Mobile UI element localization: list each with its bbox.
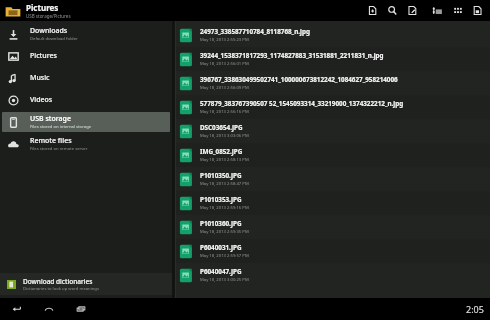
staticText: May 18, 2013 3:03:06 PM bbox=[200, 133, 249, 139]
button[interactable]: Remote files bbox=[2, 134, 170, 154]
staticText: Files stored on remote server bbox=[30, 146, 88, 152]
button[interactable]: 24973_338587710784_8118768_n.jpg bbox=[175, 23, 490, 47]
button[interactable]: USB storage bbox=[2, 112, 170, 132]
button[interactable]: Apps bbox=[447, 0, 467, 21]
button[interactable]: Back bbox=[8, 298, 26, 320]
button[interactable]: 577879_383767390507 52_1545093314_332190… bbox=[175, 95, 490, 119]
staticText: Downloads bbox=[30, 26, 68, 36]
button[interactable]: Search bbox=[382, 0, 402, 21]
staticText: May 18, 2013 2:59:57 PM bbox=[200, 253, 249, 259]
button[interactable]: Home bbox=[40, 298, 58, 320]
button[interactable]: Pictures bbox=[2, 46, 170, 66]
staticText: May 18, 2013 2:55:23 PM bbox=[200, 37, 249, 43]
staticText: 2:05 bbox=[466, 303, 484, 315]
staticText: 396767_338630499502741_100000673812242_1… bbox=[200, 75, 398, 84]
staticText: Music bbox=[30, 73, 50, 83]
button[interactable]: App icon bbox=[4, 2, 21, 19]
button[interactable]: P1010350.JPG bbox=[175, 167, 490, 191]
staticText: P6040047.JPG bbox=[200, 267, 242, 276]
staticText: 24973_338587710784_8118768_n.jpg bbox=[200, 27, 310, 36]
staticText: Files stored on internal storage bbox=[30, 124, 92, 130]
button[interactable]: Storage bbox=[427, 0, 447, 21]
staticText: USB storage bbox=[30, 114, 71, 124]
staticText: Download dictionaries bbox=[23, 277, 93, 286]
button[interactable]: P6040047.JPG bbox=[175, 263, 490, 287]
staticText: May 18, 2013 2:58:47 PM bbox=[200, 181, 249, 187]
button[interactable]: New file bbox=[362, 0, 382, 21]
staticText: Videos bbox=[30, 95, 53, 105]
staticText: Pictures bbox=[26, 2, 59, 13]
staticText: May 18, 2013 2:56:09 PM bbox=[200, 85, 249, 91]
staticText: DSC03654.JPG bbox=[200, 123, 243, 132]
button[interactable]: Downloads bbox=[2, 24, 170, 44]
button[interactable]: P6040031.JPG bbox=[175, 239, 490, 263]
button[interactable]: P1010360.JPG bbox=[175, 215, 490, 239]
staticText: May 18, 2013 2:56:16 PM bbox=[200, 109, 249, 115]
staticText: May 18, 2013 3:00:25 PM bbox=[200, 277, 249, 283]
staticText: 577879_383767390507 52_1545093314_332190… bbox=[200, 99, 404, 108]
button[interactable]: Download dictionaries bbox=[0, 273, 172, 295]
button[interactable]: DSC03654.JPG bbox=[175, 119, 490, 143]
staticText: Pictures bbox=[30, 51, 57, 61]
button[interactable]: Music bbox=[2, 68, 170, 88]
staticText: May 18, 2013 2:56:01 PM bbox=[200, 61, 249, 67]
button[interactable]: IMG_0852.JPG bbox=[175, 143, 490, 167]
staticText: May 18, 2013 2:59:35 PM bbox=[200, 229, 249, 235]
button[interactable]: P1010353.JPG bbox=[175, 191, 490, 215]
button[interactable]: 39244_1538371817293_1174827883_31531881_… bbox=[175, 47, 490, 71]
button[interactable]: More options bbox=[467, 0, 487, 21]
button[interactable]: 396767_338630499502741_100000673812242_1… bbox=[175, 71, 490, 95]
staticText: P1010360.JPG bbox=[200, 219, 242, 228]
staticText: IMG_0852.JPG bbox=[200, 147, 243, 156]
button[interactable]: Pictures bbox=[26, 2, 362, 19]
staticText: May 18, 2013 2:58:13 PM bbox=[200, 157, 249, 163]
staticText: May 18, 2013 2:59:16 PM bbox=[200, 205, 249, 211]
staticText: P6040031.JPG bbox=[200, 243, 242, 252]
staticText: 39244_1538371817293_1174827883_31531881_… bbox=[200, 51, 384, 60]
button[interactable]: Edit bbox=[402, 0, 422, 21]
staticText: Remote files bbox=[30, 136, 72, 146]
button[interactable]: Recent apps bbox=[72, 298, 90, 320]
staticText: P1010350.JPG bbox=[200, 171, 242, 180]
staticText: P1010353.JPG bbox=[200, 195, 242, 204]
button[interactable]: Videos bbox=[2, 90, 170, 110]
staticText: Dictionaries to look up word meanings bbox=[23, 286, 99, 292]
staticText: USB storage/Pictures bbox=[26, 13, 71, 19]
staticText: Default download folder bbox=[30, 36, 78, 42]
